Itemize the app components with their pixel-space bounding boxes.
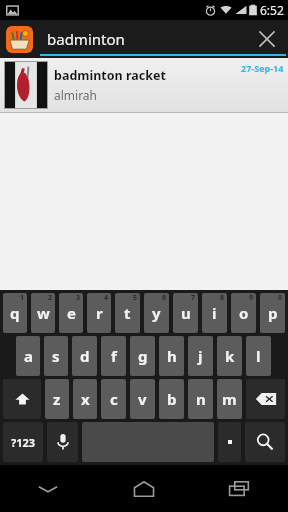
- staticText: i: [212, 303, 217, 323]
- button[interactable]: Backspace: [246, 379, 285, 419]
- staticText: 5: [133, 293, 138, 303]
- button[interactable]: t: [115, 293, 140, 333]
- button[interactable]: h: [159, 336, 184, 376]
- button[interactable]: Shift: [3, 379, 41, 419]
- staticText: w: [37, 303, 50, 323]
- button[interactable]: i: [202, 293, 227, 333]
- staticText: ?123: [11, 435, 36, 450]
- button[interactable]: m: [217, 379, 242, 419]
- staticText: e: [67, 303, 76, 323]
- staticText: 2: [48, 293, 53, 303]
- button[interactable]: Symbols: [3, 422, 43, 462]
- staticText: almirah: [54, 87, 98, 103]
- staticText: y: [152, 303, 161, 323]
- button[interactable]: Voice input: [47, 422, 78, 462]
- button[interactable]: q: [3, 293, 27, 333]
- staticText: z: [53, 389, 61, 409]
- staticText: 7: [191, 293, 196, 303]
- staticText: 27-Sep-14: [241, 62, 284, 74]
- button[interactable]: l: [246, 336, 271, 376]
- staticText: b: [167, 389, 177, 409]
- button[interactable]: Home: [96, 465, 192, 512]
- button[interactable]: a: [16, 336, 40, 376]
- button[interactable]: n: [188, 379, 213, 419]
- staticText: 9: [249, 293, 254, 303]
- staticText: x: [81, 389, 90, 409]
- staticText: q: [10, 303, 20, 323]
- staticText: o: [239, 303, 249, 323]
- staticText: v: [138, 389, 147, 409]
- staticText: p: [268, 303, 278, 323]
- staticText: s: [52, 346, 60, 366]
- staticText: k: [225, 346, 235, 366]
- staticText: m: [222, 389, 237, 409]
- staticText: g: [138, 346, 148, 366]
- staticText: 3: [76, 293, 81, 303]
- staticText: 4: [104, 293, 109, 303]
- button[interactable]: g: [130, 336, 155, 376]
- button[interactable]: r: [87, 293, 111, 333]
- staticText: l: [256, 346, 261, 366]
- button[interactable]: p: [260, 293, 285, 333]
- button[interactable]: App icon: [6, 26, 33, 53]
- staticText: 6: [162, 293, 167, 303]
- staticText: n: [196, 389, 206, 409]
- button[interactable]: badminton racket: [0, 58, 288, 112]
- button[interactable]: j: [188, 336, 213, 376]
- staticText: badminton: [47, 29, 250, 49]
- button[interactable]: y: [144, 293, 169, 333]
- button[interactable]: w: [31, 293, 55, 333]
- button[interactable]: Period: [218, 422, 241, 462]
- staticText: 1: [20, 293, 25, 303]
- staticText: h: [167, 346, 177, 366]
- staticText: r: [96, 303, 103, 323]
- button[interactable]: s: [44, 336, 68, 376]
- staticText: 8: [220, 293, 225, 303]
- staticText: d: [80, 346, 90, 366]
- button[interactable]: e: [59, 293, 83, 333]
- button[interactable]: c: [101, 379, 126, 419]
- staticText: a: [24, 346, 33, 366]
- staticText: u: [181, 303, 191, 323]
- staticText: 6:52: [260, 2, 284, 18]
- staticText: c: [110, 389, 118, 409]
- button[interactable]: Search: [245, 422, 285, 462]
- button[interactable]: z: [45, 379, 69, 419]
- button[interactable]: b: [159, 379, 184, 419]
- button[interactable]: Hide keyboard: [0, 465, 96, 512]
- staticText: j: [198, 346, 203, 366]
- staticText: f: [111, 346, 117, 366]
- staticText: 0: [278, 293, 283, 303]
- staticText: badminton racket: [54, 67, 166, 84]
- button[interactable]: x: [73, 379, 97, 419]
- button[interactable]: v: [130, 379, 155, 419]
- button[interactable]: k: [217, 336, 242, 376]
- button[interactable]: o: [231, 293, 256, 333]
- button[interactable]: Recent apps: [192, 465, 288, 512]
- button[interactable]: f: [101, 336, 126, 376]
- button[interactable]: Clear search: [250, 22, 284, 56]
- button[interactable]: u: [173, 293, 198, 333]
- staticText: t: [124, 303, 131, 323]
- button[interactable]: d: [72, 336, 97, 376]
